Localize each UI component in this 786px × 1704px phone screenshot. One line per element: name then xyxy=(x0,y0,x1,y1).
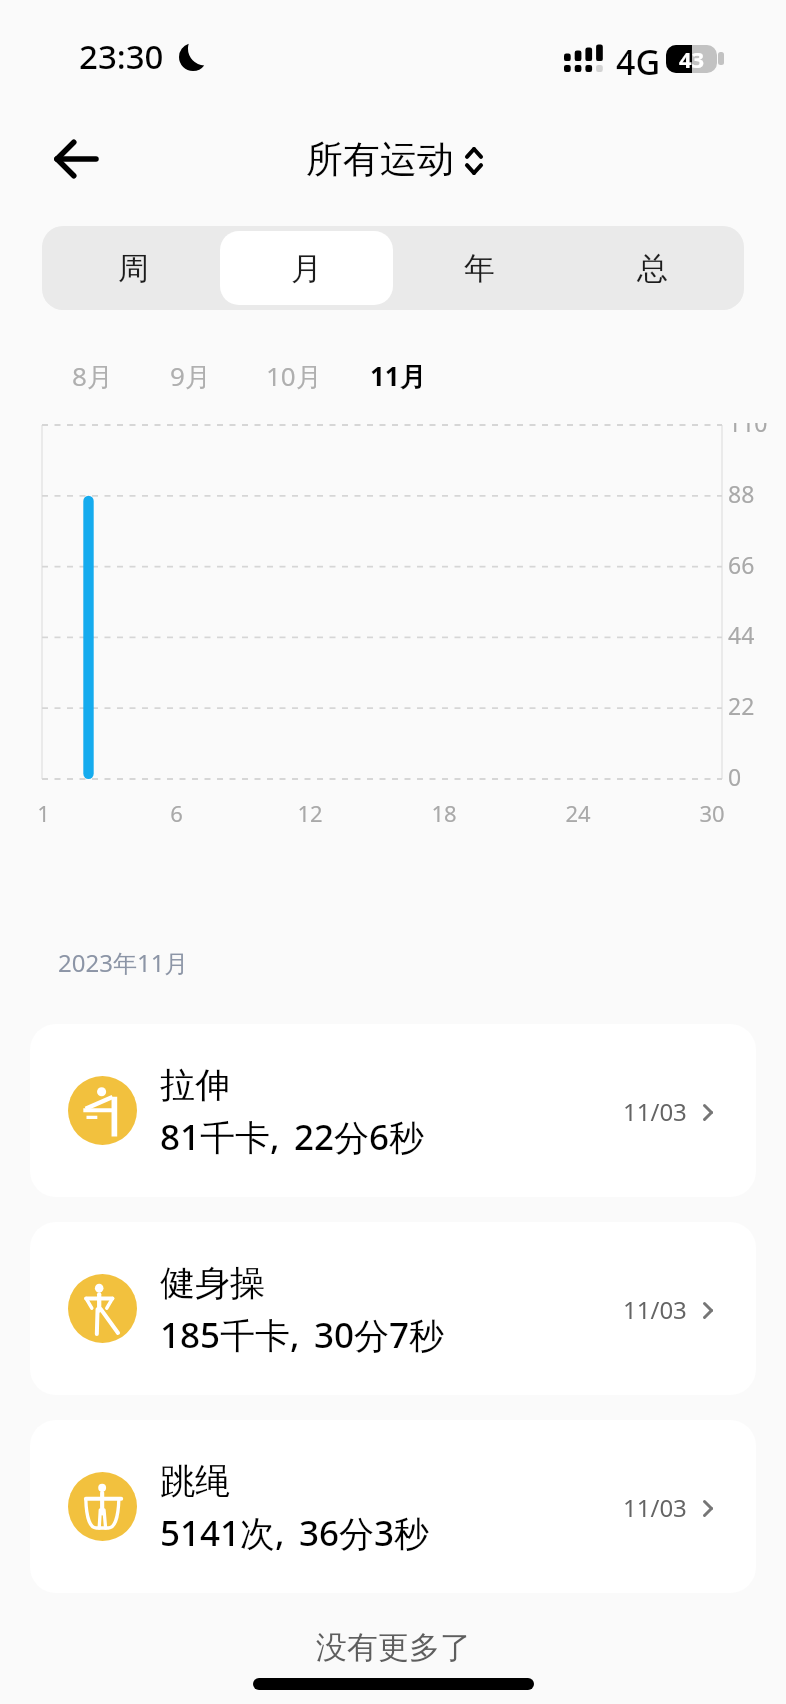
staticText: 185千卡, xyxy=(160,1311,300,1359)
button[interactable]: 11月 xyxy=(370,348,426,404)
staticText: 11/03 xyxy=(623,1491,687,1524)
staticText: 9月 xyxy=(170,358,211,394)
staticText: 总 xyxy=(637,249,668,288)
staticText: 18 xyxy=(431,798,457,826)
button[interactable]: Back xyxy=(54,129,126,189)
staticText: 11月 xyxy=(370,358,426,394)
button[interactable]: 所有运动 xyxy=(306,136,482,183)
staticText: 30 xyxy=(699,798,725,826)
staticText: 所有运动 xyxy=(306,136,454,183)
staticText: 跳绳 xyxy=(160,1459,230,1503)
button[interactable]: 9月 xyxy=(170,348,211,404)
staticText: 周 xyxy=(118,249,149,288)
staticText: 66 xyxy=(728,549,755,580)
staticText: 24 xyxy=(565,798,591,826)
staticText: 23:30 xyxy=(79,34,164,79)
staticText: 6 xyxy=(170,798,183,826)
staticText: 1 xyxy=(37,798,50,826)
button[interactable]: 8月 xyxy=(72,348,113,404)
button[interactable]: 总 xyxy=(566,231,739,305)
staticText: 年 xyxy=(464,249,495,288)
button[interactable]: 月 xyxy=(220,231,393,305)
button[interactable]: 10月 xyxy=(266,348,322,404)
staticText: 10月 xyxy=(266,358,322,394)
staticText: 没有更多了 xyxy=(316,1628,471,1667)
staticText: 0 xyxy=(728,761,742,792)
staticText: 30分7秒 xyxy=(314,1311,445,1359)
button[interactable]: 年 xyxy=(393,231,566,305)
staticText: 8月 xyxy=(72,358,113,394)
button[interactable]: 健身操 xyxy=(30,1222,756,1395)
staticText: 健身操 xyxy=(160,1261,265,1305)
staticText: 2023年11月 xyxy=(58,946,189,979)
staticText: 月 xyxy=(291,249,322,288)
staticText: 44 xyxy=(728,619,755,650)
button[interactable]: 跳绳 xyxy=(30,1420,756,1593)
staticText: 4G xyxy=(616,39,661,85)
staticText: 81千卡, xyxy=(160,1113,280,1161)
staticText: 43 xyxy=(679,44,705,72)
staticText: 5141次, xyxy=(160,1509,285,1557)
staticText: 36分3秒 xyxy=(299,1509,430,1557)
staticText: 12 xyxy=(297,798,323,826)
staticText: 22分6秒 xyxy=(294,1113,425,1161)
staticText: 11/03 xyxy=(623,1293,687,1326)
button[interactable]: 周 xyxy=(47,231,220,305)
staticText: 110 xyxy=(728,423,768,438)
staticText: 11/03 xyxy=(623,1095,687,1128)
staticText: 88 xyxy=(728,478,755,509)
button[interactable]: 拉伸 xyxy=(30,1024,756,1197)
staticText: 22 xyxy=(728,690,755,721)
staticText: 拉伸 xyxy=(160,1063,230,1107)
